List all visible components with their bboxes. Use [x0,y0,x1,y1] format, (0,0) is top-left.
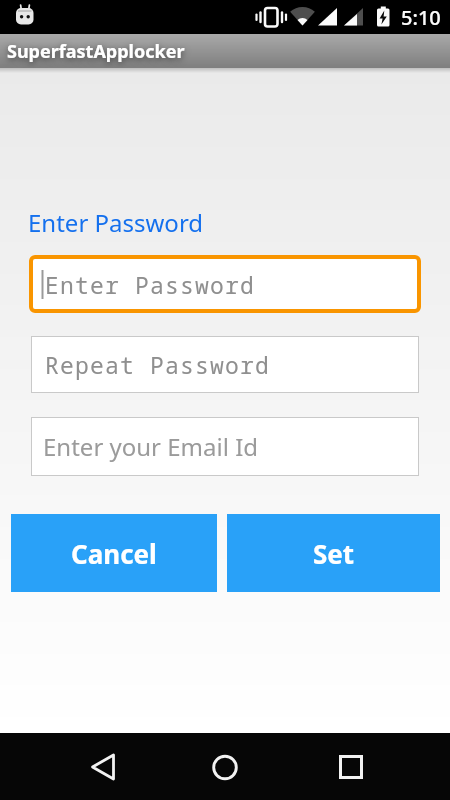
button[interactable] [323,739,378,794]
button[interactable] [75,739,130,794]
staticText: Cancel [71,536,157,571]
button[interactable]: Enter your Email Id [31,417,419,476]
staticText: Enter your Email Id [43,430,259,463]
staticText: Repeat Password [45,349,271,380]
staticText: Enter Password [28,206,204,239]
button[interactable]: Enter Password [29,255,421,313]
button[interactable]: Set [227,514,440,592]
staticText: 5:10 [401,4,441,31]
staticText: SuperfastApplocker [7,39,185,64]
staticText: Set [313,536,355,571]
staticText: Enter Password [45,269,256,300]
button[interactable]: Repeat Password [31,336,419,393]
button[interactable] [197,739,252,794]
button[interactable]: Cancel [11,514,217,592]
